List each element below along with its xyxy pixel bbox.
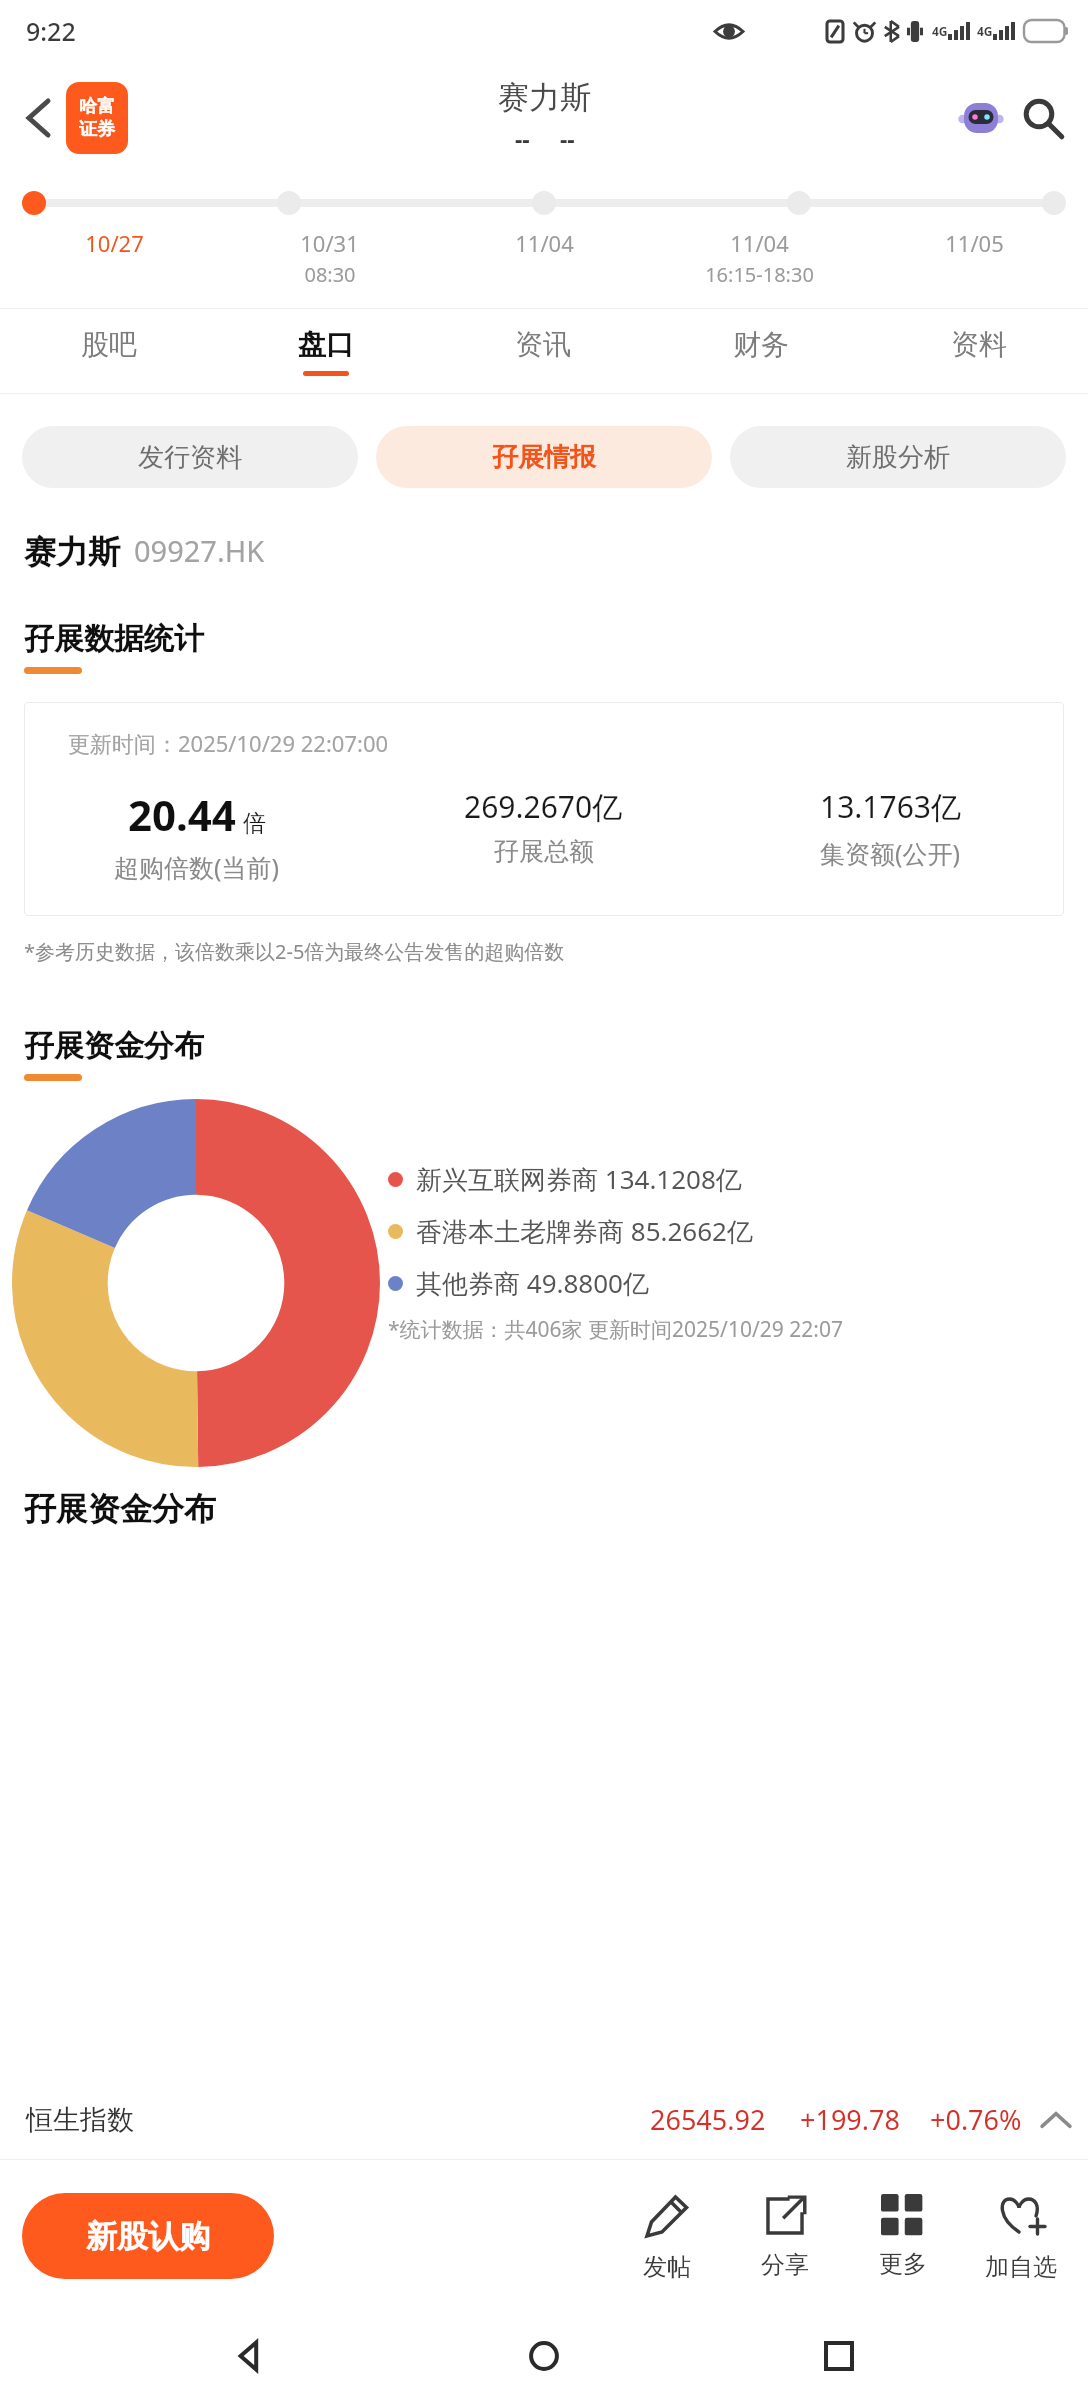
staticText: 新兴互联网券商 134.1208亿 — [416, 1161, 742, 1197]
staticText: 新股认购 — [86, 2217, 210, 2256]
staticText: 资讯 — [515, 327, 571, 362]
button[interactable]: 盘口 — [217, 309, 434, 393]
staticText: 孖展资金分布 — [24, 1027, 204, 1065]
staticText: 11/05 — [945, 228, 1004, 258]
staticText: 证券 — [79, 118, 115, 141]
button[interactable]: Home — [498, 2312, 590, 2400]
staticText: 更多 — [879, 2249, 927, 2279]
staticText: 4G — [977, 23, 993, 39]
staticText: 16:15-18:30 — [705, 261, 814, 288]
button[interactable]: 分享 — [726, 2160, 844, 2312]
staticText: 加自选 — [985, 2252, 1057, 2282]
staticText: 孖展情报 — [492, 441, 596, 474]
staticText: 其他券商 49.8800亿 — [416, 1265, 649, 1301]
staticText: 孖展总额 — [494, 836, 594, 867]
staticText: *参考历史数据，该倍数乘以2-5倍为最终公告发售的超购倍数 — [24, 938, 565, 965]
button[interactable]: 恒生指数 — [0, 2079, 1088, 2159]
staticText: +199.78 — [800, 2101, 900, 2138]
staticText: 10/31 — [300, 228, 359, 258]
staticText: 盘口 — [298, 327, 354, 362]
staticText: 恒生指数 — [26, 2103, 134, 2137]
button[interactable]: 更多 — [844, 2160, 962, 2312]
other: Expand — [1042, 2112, 1070, 2128]
staticText: 财务 — [733, 327, 789, 362]
staticText: 赛力斯 — [498, 78, 591, 117]
staticText: 孖展资金分布 — [24, 1489, 216, 1529]
button[interactable]: 加自选 — [962, 2160, 1080, 2312]
button[interactable]: 发帖 — [608, 2160, 726, 2312]
staticText: 新股分析 — [846, 441, 950, 474]
staticText: 08:30 — [304, 261, 356, 288]
staticText: 09927.HK — [134, 531, 265, 570]
button[interactable]: 发行资料 — [22, 426, 358, 488]
staticText: 股吧 — [81, 327, 137, 362]
button[interactable]: Back — [12, 92, 64, 144]
staticText: 11/04 — [515, 228, 574, 258]
button[interactable]: 资料 — [870, 309, 1088, 393]
staticText: 4G — [932, 23, 948, 39]
button[interactable]: Recents — [793, 2312, 885, 2400]
button[interactable]: 孖展情报 — [376, 426, 712, 488]
button[interactable]: 资讯 — [434, 309, 652, 393]
staticText: 更新时间：2025/10/29 22:07:00 — [68, 728, 389, 758]
staticText: -- — [560, 123, 575, 154]
button[interactable]: 新股认购 — [22, 2193, 274, 2279]
button[interactable]: Back — [203, 2312, 295, 2400]
staticText: 倍 — [243, 809, 266, 838]
staticText: 20.44 — [128, 786, 236, 843]
staticText: *统计数据：共406家 更新时间2025/10/29 22:07 — [388, 1315, 843, 1344]
staticText: 10/27 — [85, 228, 144, 258]
staticText: +0.76% — [930, 2101, 1022, 2138]
staticText: 赛力斯 — [24, 532, 120, 572]
staticText: 集资额(公开) — [820, 836, 961, 870]
button[interactable]: Broker — [66, 82, 128, 154]
button[interactable]: Assistant — [952, 89, 1010, 147]
button[interactable]: 股吧 — [0, 309, 217, 393]
staticText: 分享 — [761, 2250, 809, 2280]
staticText: 哈富 — [79, 95, 115, 118]
staticText: 孖展数据统计 — [24, 620, 204, 658]
staticText: 11/04 — [730, 228, 789, 258]
staticText: 发行资料 — [138, 441, 242, 474]
button[interactable]: 新股分析 — [730, 426, 1066, 488]
staticText: 13.1763亿 — [820, 786, 961, 827]
staticText: 9:22 — [26, 14, 76, 48]
button[interactable]: 财务 — [652, 309, 870, 393]
button[interactable]: Search — [1014, 89, 1072, 147]
staticText: 资料 — [951, 327, 1007, 362]
staticText: 发帖 — [643, 2252, 691, 2282]
staticText: 269.2670亿 — [464, 786, 623, 827]
staticText: 香港本土老牌券商 85.2662亿 — [416, 1213, 753, 1249]
staticText: 26545.92 — [650, 2101, 766, 2138]
staticText: -- — [515, 123, 530, 154]
staticText: 超购倍数(当前) — [114, 850, 280, 884]
